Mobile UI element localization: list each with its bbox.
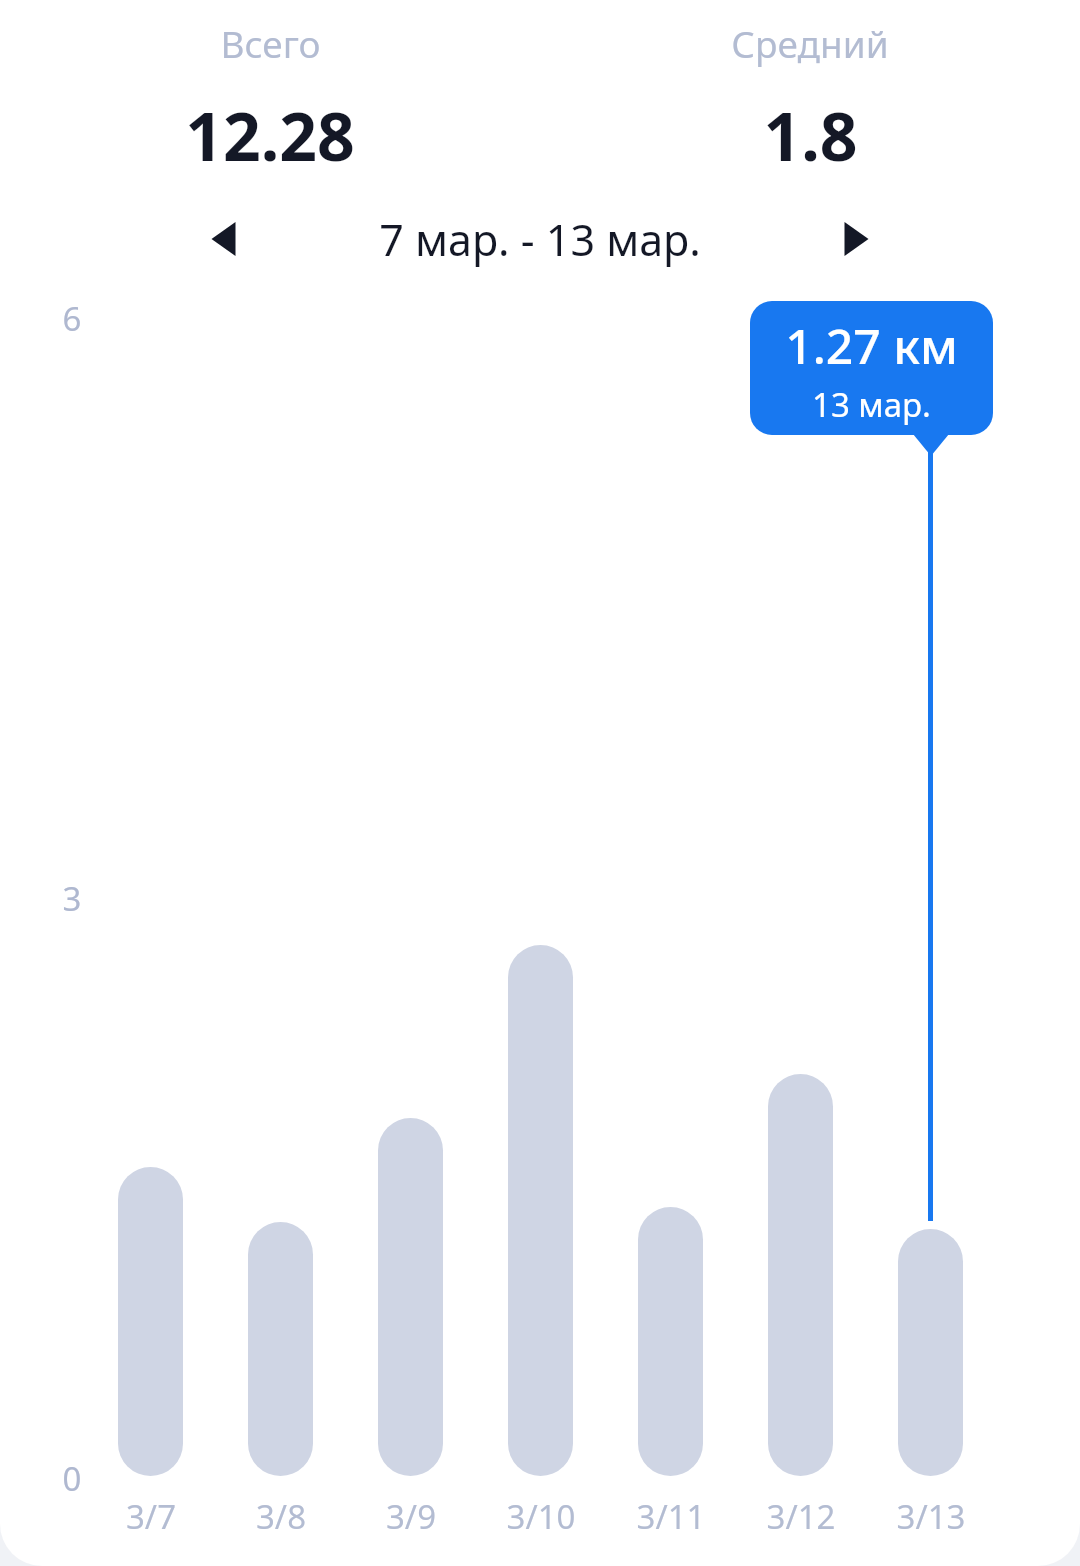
staticText: 0 xyxy=(40,1456,104,1501)
staticText: 3/8 xyxy=(211,1494,351,1539)
staticText: 3/12 xyxy=(731,1494,871,1539)
button[interactable]: Средний xyxy=(540,18,1080,180)
staticText: 6 xyxy=(40,296,104,341)
staticText: 3/11 xyxy=(601,1494,741,1539)
staticText: Средний xyxy=(731,18,889,68)
staticText: 13 мар. xyxy=(812,382,931,427)
button[interactable]: 1.27 км xyxy=(750,301,993,457)
staticText: 1.27 км xyxy=(785,313,958,378)
staticText: 12.28 xyxy=(185,90,355,180)
button[interactable]: Next week xyxy=(810,200,900,278)
staticText: 3 xyxy=(40,876,104,921)
staticText: 3/13 xyxy=(861,1494,1001,1539)
staticText: 1.8 xyxy=(763,90,858,180)
staticText: Всего xyxy=(220,18,321,68)
button[interactable]: Previous week xyxy=(180,200,270,278)
staticText: 7 мар. - 13 мар. xyxy=(270,210,810,269)
button[interactable]: Всего xyxy=(0,18,540,180)
staticText: 3/7 xyxy=(81,1494,221,1539)
staticText: 3/9 xyxy=(341,1494,481,1539)
staticText: 3/10 xyxy=(471,1494,611,1539)
